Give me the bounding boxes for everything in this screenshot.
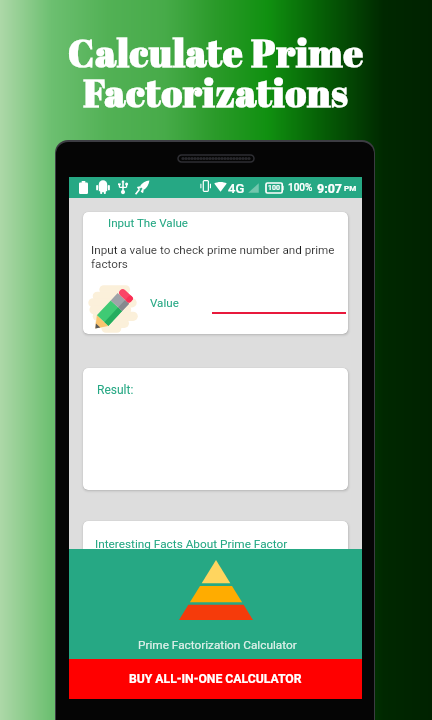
staticText: Result: [97, 383, 134, 397]
staticText: PM [344, 184, 357, 193]
staticText: 4G [228, 181, 245, 196]
button[interactable]: Interesting Facts About Prime Factor [83, 521, 348, 591]
staticText: 100 [268, 184, 280, 192]
staticText: 100% [288, 182, 313, 194]
staticText: Input The Value [108, 216, 189, 230]
staticText: Input a value to check prime number and … [91, 243, 339, 271]
button[interactable]: Prime Factorization Calculator [69, 549, 362, 659]
staticText: BUY ALL-IN-ONE CALCULATOR [129, 672, 302, 686]
staticText: Interesting Facts About Prime Factor [95, 537, 288, 551]
staticText: Calculate Prime Factorizations [0, 27, 432, 118]
staticText: Prime Factorization Calculator [138, 638, 297, 652]
button[interactable]: Input The Value [83, 212, 348, 334]
button[interactable]: BUY ALL-IN-ONE CALCULATOR [69, 659, 362, 699]
staticText: Value [150, 296, 179, 310]
button[interactable]: Result: [83, 368, 348, 490]
staticText: 9:07 [317, 181, 343, 196]
